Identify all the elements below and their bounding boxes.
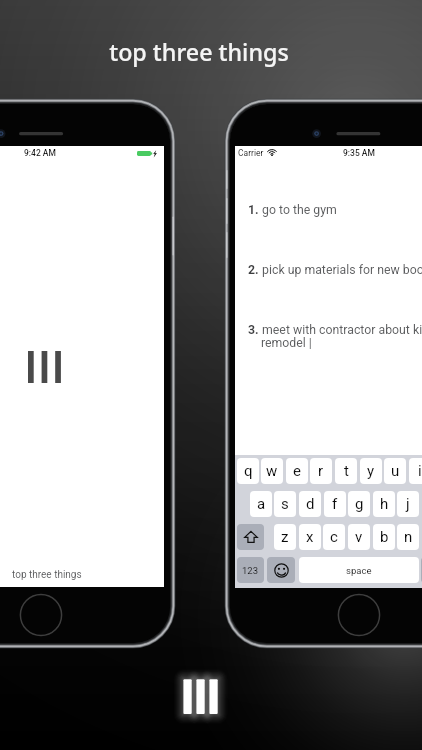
staticText: 9:42 AM (24, 148, 56, 158)
staticText: x (306, 528, 314, 546)
button[interactable]: n (397, 524, 419, 550)
staticText: j (406, 495, 410, 513)
staticText: 2. (248, 263, 259, 277)
button[interactable]: c (323, 524, 345, 550)
button[interactable]: h (373, 491, 395, 517)
button[interactable]: v (348, 524, 370, 550)
staticText: c (330, 528, 338, 546)
staticText: n (404, 528, 413, 546)
staticText: go to the gym (259, 203, 337, 217)
staticText: 3. (248, 323, 259, 337)
staticText: f (332, 495, 338, 513)
staticText: 9:35 AM (343, 148, 375, 158)
staticText: 123 (242, 565, 259, 576)
staticText: 1. (248, 203, 259, 217)
staticText: w (266, 462, 278, 480)
staticText: h (380, 495, 389, 513)
button[interactable]: i (409, 458, 422, 484)
button[interactable]: g (348, 491, 370, 517)
button[interactable]: r (310, 458, 332, 484)
staticText: top three things (109, 36, 289, 68)
button[interactable]: b (373, 524, 395, 550)
staticText: e (293, 462, 301, 480)
button[interactable]: x (299, 524, 321, 550)
staticText: u (391, 462, 400, 480)
staticText: b (380, 528, 389, 546)
button[interactable]: return (421, 557, 422, 583)
staticText: remodel | (261, 336, 312, 350)
button[interactable]: y (360, 458, 382, 484)
button[interactable]: shift (237, 524, 264, 550)
button[interactable]: 123 (237, 557, 264, 583)
staticText: a (257, 495, 266, 513)
staticText: r (318, 462, 324, 480)
button[interactable]: space (299, 557, 419, 583)
button[interactable]: f (324, 491, 346, 517)
button[interactable]: e (286, 458, 308, 484)
button[interactable]: q (237, 458, 259, 484)
staticText: v (355, 528, 363, 546)
button[interactable]: d (299, 491, 321, 517)
button[interactable]: w (261, 458, 283, 484)
button[interactable]: z (274, 524, 296, 550)
staticText: meet with contractor about kitchen (259, 323, 422, 337)
staticText: d (306, 495, 315, 513)
staticText: g (355, 495, 364, 513)
staticText: Carrier (238, 148, 264, 158)
staticText: q (244, 462, 253, 480)
staticText: y (367, 462, 375, 480)
button[interactable]: a (250, 491, 272, 517)
button[interactable]: emoji (267, 557, 295, 583)
staticText: space (346, 565, 372, 576)
button[interactable]: j (397, 491, 419, 517)
button[interactable]: s (274, 491, 296, 517)
staticText: i (418, 462, 422, 480)
button[interactable]: t (335, 458, 357, 484)
button[interactable]: u (384, 458, 406, 484)
staticText: s (281, 495, 289, 513)
staticText: z (281, 528, 289, 546)
staticText: top three things (12, 569, 82, 581)
staticText: pick up materials for new bookshelf (259, 263, 422, 277)
staticText: t (344, 462, 349, 480)
